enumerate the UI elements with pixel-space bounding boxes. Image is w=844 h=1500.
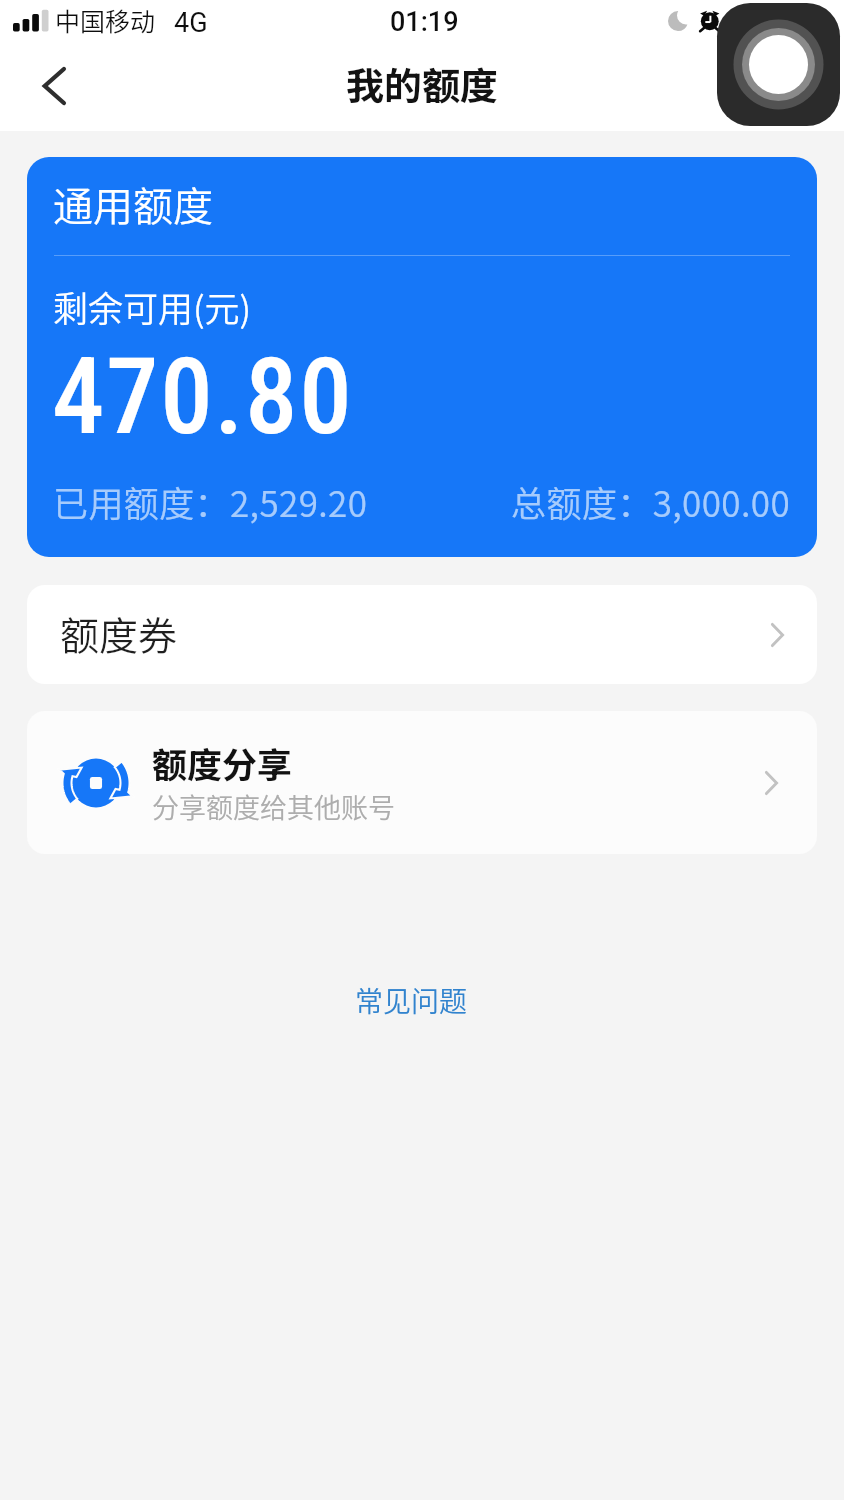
staticText: 总额度：3,000.00 (511, 476, 790, 527)
staticText: 通用额度 (53, 175, 213, 233)
staticText: 中国移动 (55, 2, 156, 38)
staticText: 我的额度 (346, 56, 499, 111)
staticText: 剩余可用(元) (53, 281, 252, 332)
staticText: 已用额度：2,529.20 (53, 476, 368, 527)
button[interactable]: 常见问题 (331, 972, 491, 1028)
staticText: 4G (174, 7, 208, 39)
staticText: 分享额度给其他账号 (152, 787, 395, 826)
button[interactable]: 通用额度 (27, 157, 817, 557)
button[interactable]: 额度券 (27, 585, 817, 684)
button[interactable]: 额度分享 (27, 711, 817, 854)
staticText: 额度券 (60, 605, 178, 661)
staticText: 常见问题 (355, 980, 468, 1021)
button[interactable]: Back (18, 50, 90, 122)
staticText: 01:19 (390, 6, 459, 38)
staticText: 470.80 (52, 336, 354, 459)
staticText: 额度分享 (152, 737, 293, 788)
